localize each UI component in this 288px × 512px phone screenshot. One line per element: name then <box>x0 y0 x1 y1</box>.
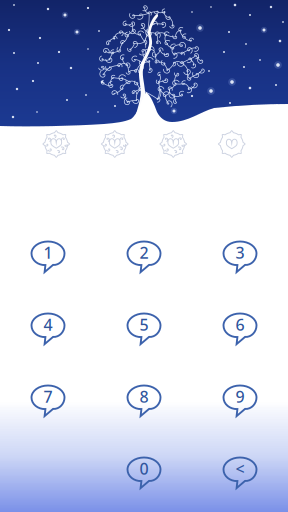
staticText: 6 <box>235 314 244 335</box>
staticText: 8 <box>139 386 148 407</box>
button[interactable]: 8 <box>113 377 175 425</box>
staticText: 3 <box>235 242 244 263</box>
button[interactable]: 2 <box>113 233 175 281</box>
staticText: 4 <box>43 314 52 335</box>
staticText: 5 <box>139 314 148 335</box>
button[interactable]: Snow theme <box>97 126 132 161</box>
button[interactable]: 4 <box>17 305 79 353</box>
button[interactable]: 6 <box>209 305 271 353</box>
button[interactable]: 5 <box>113 305 175 353</box>
staticText: < <box>235 458 244 479</box>
button[interactable]: Winter theme <box>39 126 74 161</box>
button[interactable]: 7 <box>17 377 79 425</box>
button[interactable]: 1 <box>17 233 79 281</box>
button[interactable]: Favourites <box>214 126 249 161</box>
staticText: 7 <box>43 386 52 407</box>
button[interactable]: < <box>209 449 271 497</box>
button[interactable]: Frost theme <box>156 126 191 161</box>
staticText: 0 <box>139 458 148 479</box>
button[interactable]: 9 <box>209 377 271 425</box>
staticText: 1 <box>43 242 52 263</box>
staticText: 9 <box>235 386 244 407</box>
button[interactable]: 3 <box>209 233 271 281</box>
staticText: 2 <box>139 242 148 263</box>
button[interactable]: 0 <box>113 449 175 497</box>
